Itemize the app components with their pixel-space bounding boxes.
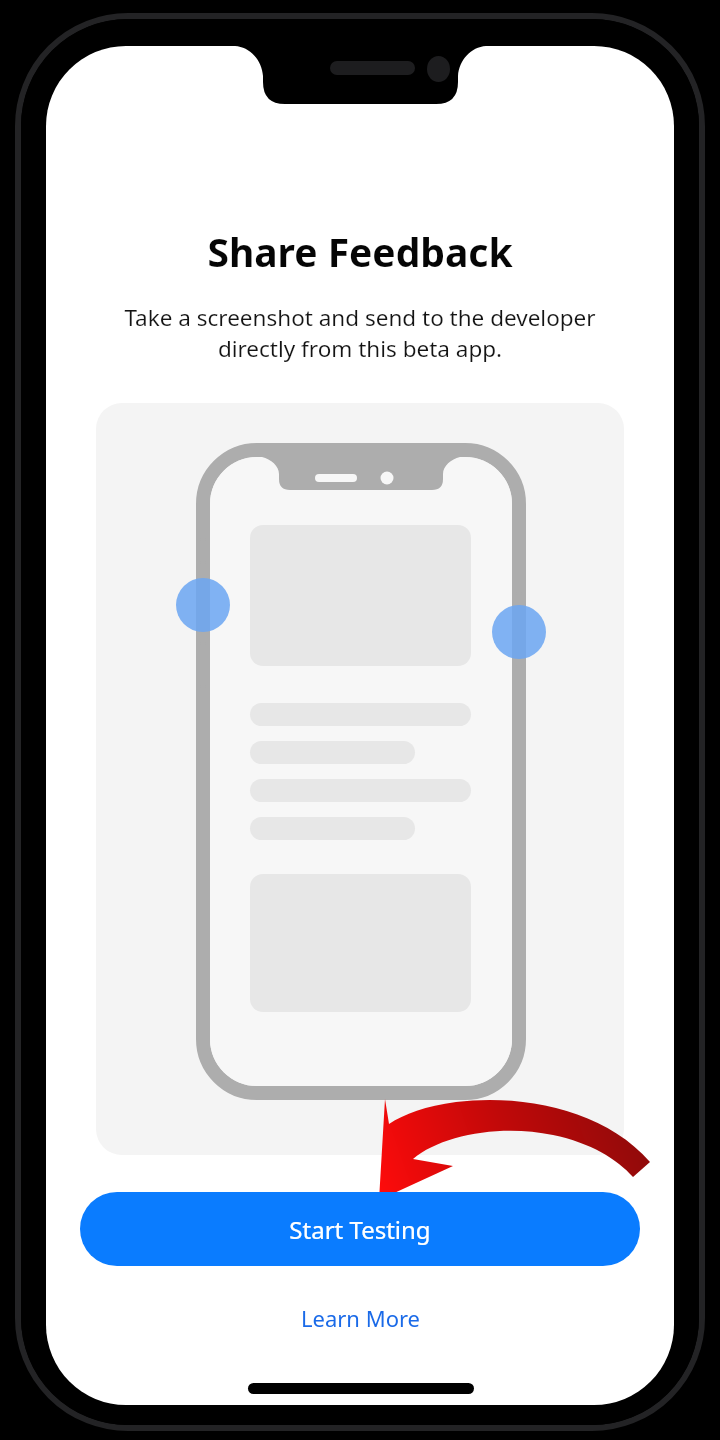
button[interactable]: Start Testing xyxy=(80,1192,640,1266)
staticText: Learn More xyxy=(301,1303,420,1333)
staticText: Share Feedback xyxy=(0,225,720,278)
staticText: Start Testing xyxy=(289,1213,431,1246)
button[interactable]: Learn More xyxy=(240,1293,480,1343)
staticText: Take a screenshot and send to the develo… xyxy=(44,302,676,364)
